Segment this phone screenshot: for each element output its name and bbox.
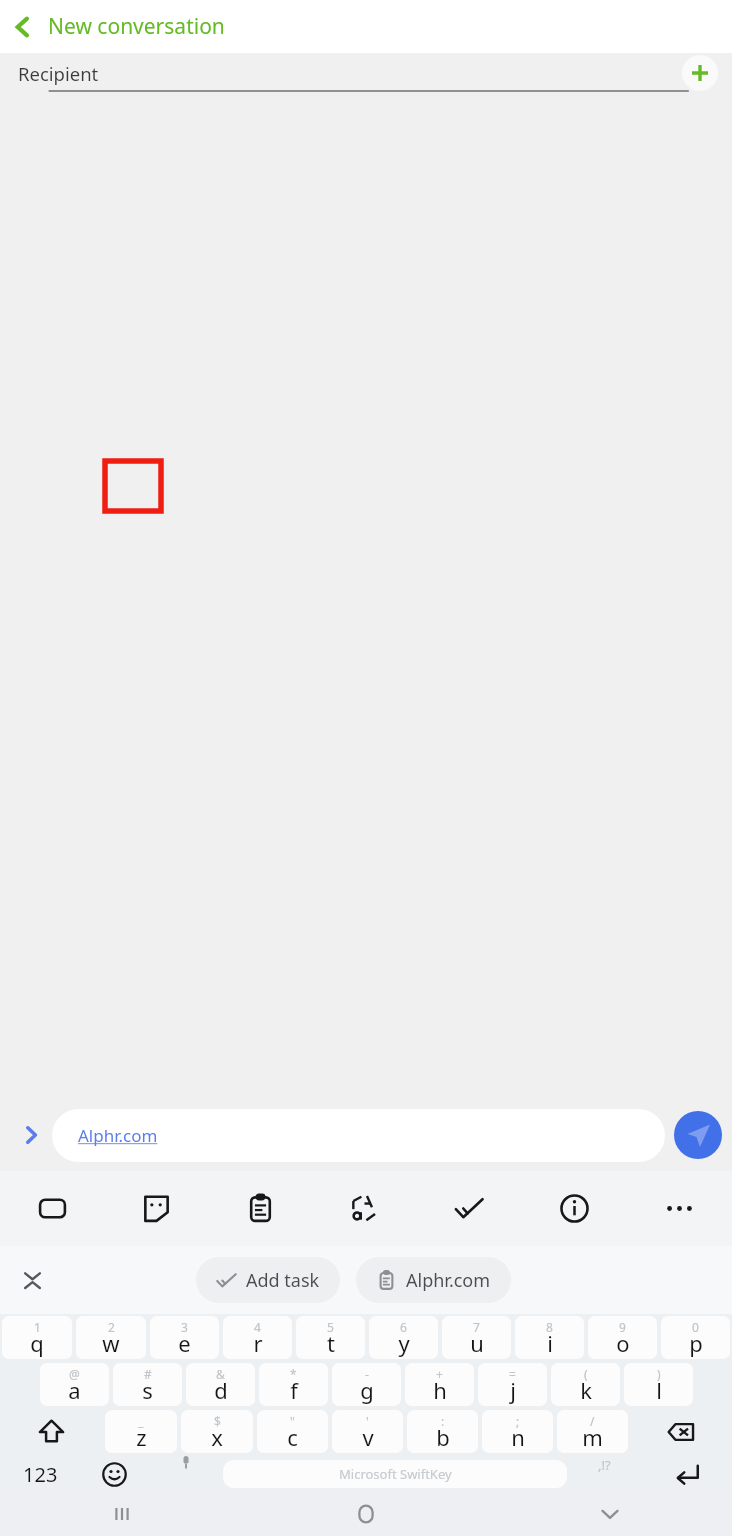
button[interactable]: Add recipient <box>682 55 718 91</box>
staticText: v <box>362 1422 374 1452</box>
staticText: $ <box>214 1413 221 1429</box>
staticText: 1 <box>34 1319 41 1335</box>
button[interactable]: Microsoft SwiftKey <box>223 1460 567 1488</box>
staticText: 6 <box>400 1319 407 1335</box>
button[interactable]: Translate <box>312 1171 417 1246</box>
button[interactable]: 9 <box>588 1316 657 1359</box>
button[interactable]: Clipboard <box>208 1171 312 1246</box>
button[interactable]: 3 <box>150 1316 219 1359</box>
button[interactable]: 123 <box>0 1456 81 1492</box>
staticText: ; <box>516 1413 520 1429</box>
button[interactable]: & <box>186 1363 255 1406</box>
staticText: b <box>436 1422 450 1452</box>
staticText: f <box>290 1375 298 1405</box>
button[interactable]: Hide keyboard <box>488 1492 732 1536</box>
button[interactable]: Add task <box>196 1257 340 1303</box>
staticText: _ <box>138 1413 144 1429</box>
button[interactable]: @ <box>40 1363 109 1406</box>
button[interactable]: 2 <box>76 1316 146 1359</box>
button[interactable]: Shift <box>0 1409 103 1454</box>
button[interactable]: Enter <box>642 1456 732 1492</box>
button[interactable]: ( <box>551 1363 620 1406</box>
button[interactable]: : <box>407 1410 478 1453</box>
staticText: c <box>287 1422 298 1452</box>
staticText: 0 <box>692 1319 699 1335</box>
button[interactable]: " <box>257 1410 328 1453</box>
button[interactable]: $ <box>181 1410 253 1453</box>
staticText: Alphr.com <box>406 1268 491 1293</box>
staticText: 8 <box>546 1319 553 1335</box>
button[interactable]: 7 <box>442 1316 511 1359</box>
staticText: z <box>136 1422 147 1452</box>
staticText: y <box>398 1328 410 1358</box>
staticText: i <box>547 1328 553 1358</box>
staticText: / <box>590 1413 595 1429</box>
button[interactable]: 6 <box>369 1316 438 1359</box>
staticText: 123 <box>23 1461 58 1488</box>
staticText: s <box>142 1375 153 1405</box>
button[interactable]: Alphr.com <box>356 1257 511 1303</box>
staticText: u <box>470 1328 484 1358</box>
staticText: # <box>144 1366 152 1382</box>
button[interactable]: Home <box>244 1492 488 1536</box>
button[interactable]: Info <box>522 1171 627 1246</box>
staticText: r <box>253 1328 263 1358</box>
button[interactable]: Expand <box>10 1114 52 1156</box>
button[interactable]: Emoji <box>81 1456 148 1492</box>
staticText: * <box>290 1366 297 1382</box>
staticText: e <box>178 1328 191 1358</box>
button[interactable]: Collapse <box>0 1246 64 1314</box>
staticText: t <box>327 1328 335 1358</box>
staticText: = <box>509 1366 516 1382</box>
button[interactable]: / <box>557 1410 628 1453</box>
button[interactable]: + <box>405 1363 474 1406</box>
staticText: 5 <box>327 1319 334 1335</box>
button[interactable]: Backspace <box>630 1409 732 1454</box>
staticText: d <box>214 1375 228 1405</box>
button[interactable]: ,!? <box>567 1456 642 1492</box>
button[interactable]: Tasks <box>417 1171 522 1246</box>
staticText: " <box>290 1413 295 1429</box>
button[interactable]: GIF <box>0 1171 104 1246</box>
button[interactable]: 8 <box>515 1316 584 1359</box>
staticText: g <box>360 1375 374 1405</box>
button[interactable]: _ <box>105 1410 177 1453</box>
staticText: 3 <box>181 1319 188 1335</box>
staticText: ' <box>366 1413 369 1429</box>
staticText: l <box>656 1375 662 1405</box>
staticText: ,!? <box>598 1456 611 1474</box>
button[interactable]: More <box>627 1171 732 1246</box>
staticText: n <box>511 1422 525 1452</box>
staticText: x <box>211 1422 223 1452</box>
button[interactable]: Alphr.com <box>52 1109 665 1162</box>
staticText: 7 <box>473 1319 480 1335</box>
button[interactable]: ; <box>482 1410 553 1453</box>
button[interactable]: = <box>478 1363 547 1406</box>
button[interactable]: 5 <box>296 1316 365 1359</box>
button[interactable]: Recents <box>0 1492 244 1536</box>
staticText: Add task <box>246 1268 320 1293</box>
button[interactable]: ' <box>332 1410 403 1453</box>
staticText: h <box>433 1375 447 1405</box>
button[interactable]: 4 <box>223 1316 292 1359</box>
button[interactable]: 1 <box>2 1316 72 1359</box>
button[interactable]: * <box>259 1363 328 1406</box>
staticText: 4 <box>254 1319 261 1335</box>
button[interactable]: 0 <box>661 1316 730 1359</box>
staticText: ) <box>657 1366 661 1382</box>
staticText: - <box>365 1366 369 1382</box>
button[interactable]: , <box>148 1456 223 1492</box>
staticText: Recipient <box>18 61 99 86</box>
staticText: + <box>436 1366 443 1382</box>
button[interactable]: Back <box>0 4 46 50</box>
staticText: Microsoft SwiftKey <box>339 1465 452 1483</box>
button[interactable]: Send <box>674 1111 722 1159</box>
button[interactable]: - <box>332 1363 401 1406</box>
staticText: : <box>441 1413 445 1429</box>
staticText: & <box>216 1366 225 1382</box>
button[interactable]: ) <box>624 1363 693 1406</box>
button[interactable]: # <box>113 1363 182 1406</box>
button[interactable]: Sticker <box>104 1171 208 1246</box>
